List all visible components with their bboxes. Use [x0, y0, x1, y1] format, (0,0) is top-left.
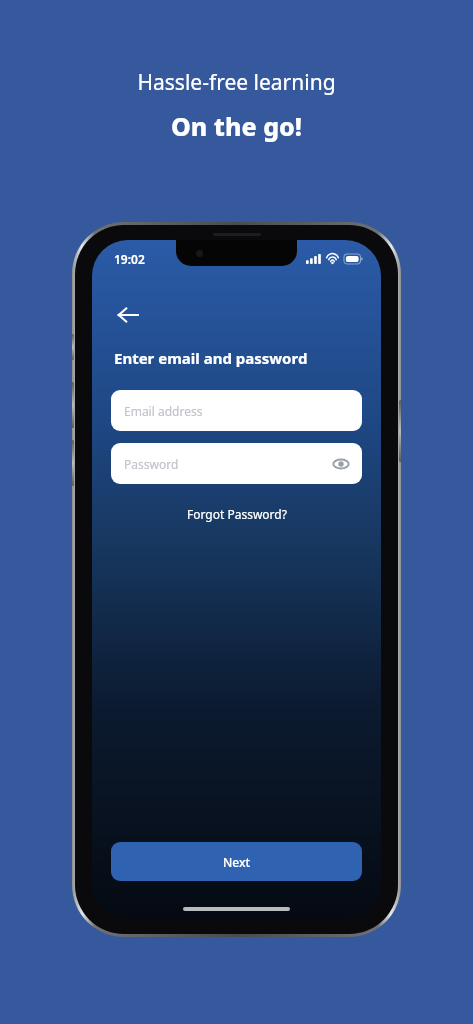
- button[interactable]: Back: [107, 294, 149, 336]
- button[interactable]: Email address: [111, 390, 362, 431]
- staticText: Forgot Password?: [187, 506, 287, 522]
- staticText: On the go!: [171, 109, 302, 143]
- button[interactable]: Forgot Password?: [179, 502, 295, 526]
- staticText: Enter email and password: [114, 348, 308, 368]
- button[interactable]: Password: [111, 443, 362, 484]
- staticText: Password: [124, 456, 179, 472]
- button[interactable]: Next: [111, 842, 362, 881]
- staticText: Next: [223, 854, 251, 870]
- staticText: Email address: [124, 403, 203, 419]
- staticText: 19:02: [114, 251, 145, 267]
- button[interactable]: Show password: [330, 453, 352, 475]
- staticText: Hassle-free learning: [137, 68, 336, 97]
